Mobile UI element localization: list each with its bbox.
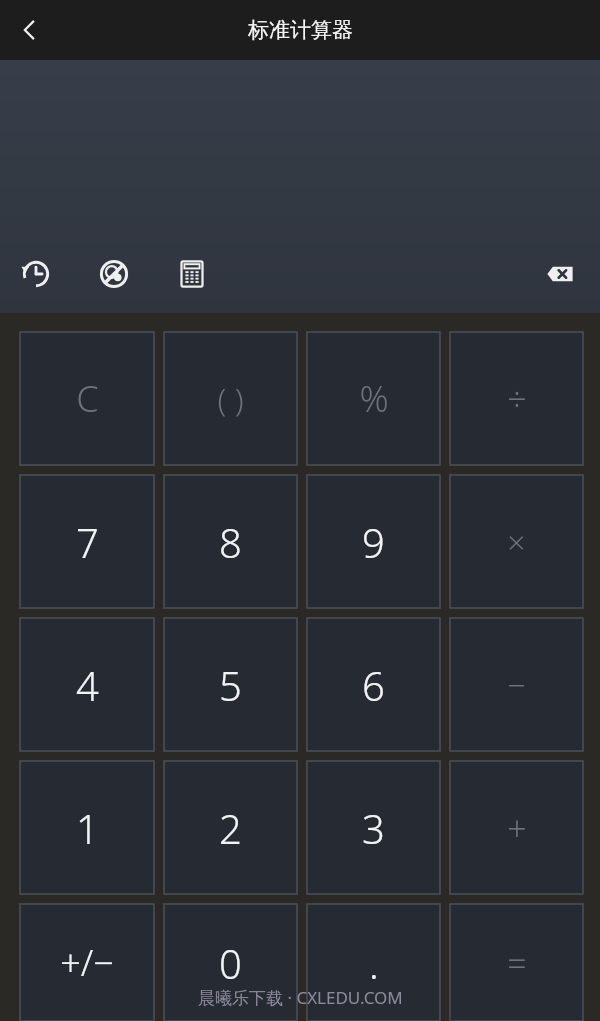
button[interactable]: 5	[164, 618, 297, 751]
button[interactable]: History	[8, 246, 64, 302]
staticText: +/−	[60, 938, 114, 987]
staticText: 0	[219, 936, 242, 990]
staticText: 8	[219, 515, 242, 569]
button[interactable]: Backspace	[532, 246, 588, 302]
staticText: −	[507, 663, 526, 707]
staticText: 标准计算器	[248, 17, 353, 43]
button[interactable]: 0	[164, 904, 297, 1021]
staticText: 5	[219, 658, 242, 712]
button[interactable]: .	[307, 904, 440, 1021]
button[interactable]: 7	[20, 475, 154, 608]
staticText: 1	[76, 801, 99, 855]
button[interactable]: Back	[0, 1, 58, 59]
staticText: +	[507, 805, 527, 851]
button[interactable]: 1	[20, 761, 154, 894]
button[interactable]: Calculator mode	[164, 246, 220, 302]
button[interactable]: 4	[20, 618, 154, 751]
staticText: 3	[362, 801, 385, 855]
staticText: .	[369, 936, 379, 990]
staticText: =	[507, 940, 527, 986]
staticText: 4	[76, 658, 99, 712]
staticText: 7	[76, 515, 99, 569]
staticText: 2	[219, 801, 242, 855]
button[interactable]: +	[450, 761, 583, 894]
button[interactable]: ( )	[164, 332, 297, 465]
staticText: 9	[362, 515, 385, 569]
staticText: ÷	[507, 376, 527, 422]
button[interactable]: +/−	[20, 904, 154, 1021]
button[interactable]: %	[307, 332, 440, 465]
staticText: ×	[507, 520, 526, 564]
staticText: ( )	[217, 377, 244, 421]
button[interactable]: C	[20, 332, 154, 465]
button[interactable]: 8	[164, 475, 297, 608]
button[interactable]: 3	[307, 761, 440, 894]
staticText: %	[359, 374, 389, 423]
button[interactable]: 6	[307, 618, 440, 751]
button[interactable]: −	[450, 618, 583, 751]
button[interactable]: 9	[307, 475, 440, 608]
button[interactable]: =	[450, 904, 583, 1021]
button[interactable]: ×	[450, 475, 583, 608]
staticText: 晨曦乐下载 · CXLEDU.COM	[198, 986, 403, 1009]
staticText: 6	[362, 658, 385, 712]
staticText: C	[76, 374, 99, 423]
button[interactable]: No ads	[86, 246, 142, 302]
button[interactable]: 2	[164, 761, 297, 894]
button[interactable]: ÷	[450, 332, 583, 465]
